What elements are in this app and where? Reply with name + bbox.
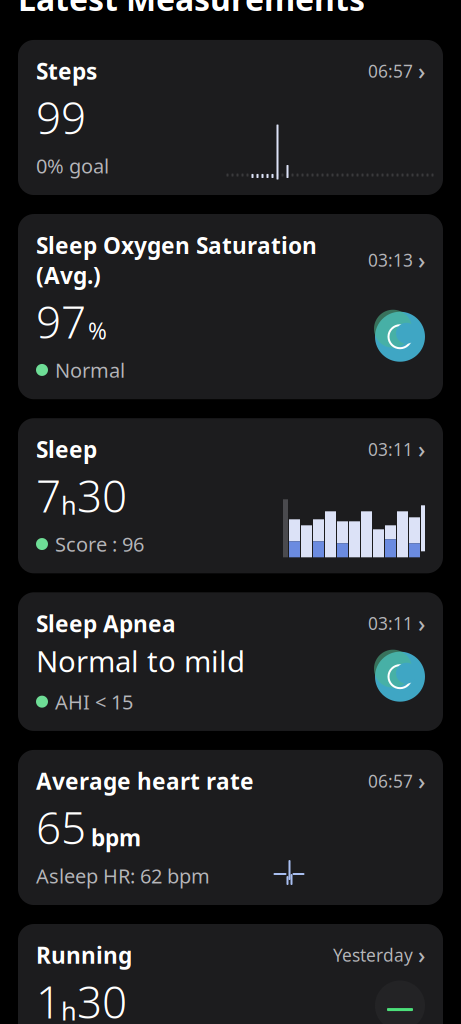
staticText: 97 [36, 292, 86, 351]
staticText: › [418, 245, 425, 275]
staticText: Sleep Apnea [36, 608, 176, 638]
staticText: 99 [36, 88, 86, 146]
staticText: h [61, 488, 77, 522]
staticText: › [418, 940, 425, 970]
staticText: 65 [36, 798, 86, 856]
staticText: Sleep Oxygen Saturation (Avg.) [36, 230, 317, 290]
staticText: Normal [55, 357, 125, 383]
staticText: 03:11 [368, 612, 413, 635]
staticText: 06:57 [368, 59, 413, 82]
staticText: Average heart rate [36, 766, 254, 796]
staticText: 03:11 [368, 438, 413, 461]
staticText: AHI < 15 [55, 688, 133, 715]
staticText: 30 [77, 466, 127, 525]
staticText: 7 [36, 466, 61, 525]
staticText: 0% goal [36, 152, 109, 179]
staticText: Latest Measurements [18, 0, 365, 20]
button[interactable]: Running [18, 924, 443, 1024]
staticText: Yesterday [333, 944, 413, 967]
staticText: % [88, 316, 107, 346]
staticText: Asleep HR: 62 bpm [36, 862, 210, 889]
staticText: Normal to mild [36, 641, 245, 680]
staticText: Running [36, 940, 132, 970]
staticText: › [418, 766, 425, 796]
staticText: 03:13 [368, 249, 413, 272]
button[interactable]: Sleep Apnea [18, 592, 443, 731]
button[interactable]: Sleep [18, 418, 443, 573]
button[interactable]: Steps [18, 40, 443, 195]
button[interactable]: Sleep Oxygen Saturation (Avg.) [18, 214, 443, 399]
staticText: › [418, 56, 425, 86]
staticText: Score : 96 [55, 531, 144, 557]
staticText: 06:57 [368, 769, 413, 792]
staticText: 1 [36, 972, 61, 1024]
staticText: h [61, 994, 77, 1024]
staticText: Steps [36, 56, 97, 86]
button[interactable]: Average heart rate [18, 750, 443, 905]
staticText: 30 [77, 972, 127, 1024]
staticText: Sleep [36, 434, 97, 464]
staticText: › [418, 608, 425, 638]
staticText: › [418, 434, 425, 464]
staticText: bpm [91, 822, 141, 852]
